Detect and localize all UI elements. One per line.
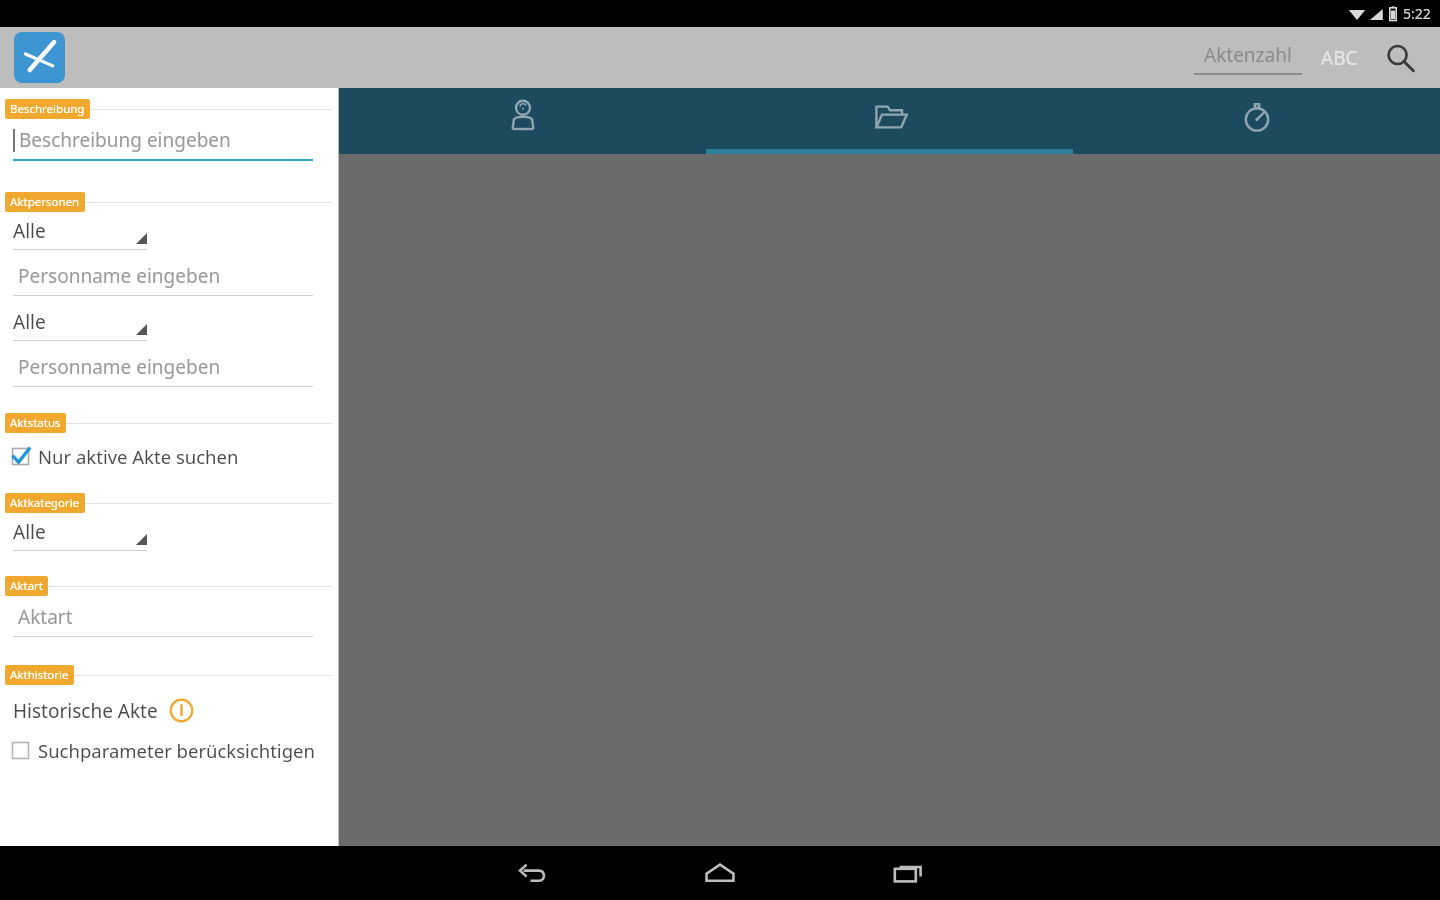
staticText: ABC [1321,45,1358,71]
staticText: Akthistorie [10,667,69,683]
button[interactable]: Aktart [13,604,313,637]
staticText: Aktart [10,578,43,594]
staticText: Aktart [18,604,73,630]
staticText: 5:22 [1403,4,1431,23]
button[interactable]: Alle [13,309,147,341]
button[interactable]: Back [484,846,580,900]
button[interactable]: Suchparameter berücksichtigen [11,738,331,763]
staticText: Beschreibung eingeben [19,127,231,153]
button[interactable]: App [14,32,65,83]
staticText: Suchparameter berücksichtigen [38,738,315,763]
staticText: Historische Akte [13,698,158,724]
staticText: Aktkategorie [10,495,80,511]
button[interactable]: ABC [1321,45,1358,71]
button[interactable]: Timer [1073,88,1440,154]
button[interactable]: Historische Akte [13,697,331,724]
button[interactable]: Recents [860,846,956,900]
button[interactable]: Aktenzahl [1194,39,1302,77]
staticText: Alle [13,309,46,335]
button[interactable]: Search [1378,36,1422,80]
staticText: Nur aktive Akte suchen [38,444,239,469]
staticText: Personname eingeben [18,263,221,289]
staticText: Beschreibung [10,101,85,117]
button[interactable]: Personname eingeben [13,354,313,387]
staticText: Aktenzahl [1204,42,1292,68]
staticText: Aktstatus [10,415,61,431]
button[interactable]: Nur aktive Akte suchen [11,444,331,469]
staticText: Personname eingeben [18,354,221,380]
button[interactable]: Person [339,88,706,154]
button[interactable]: Alle [13,519,147,551]
button[interactable]: Personname eingeben [13,263,313,296]
button[interactable]: Beschreibung eingeben [13,127,313,161]
button[interactable]: Alle [13,218,147,250]
staticText: Aktpersonen [10,194,80,210]
button[interactable]: Files [706,88,1073,154]
staticText: Alle [13,218,46,244]
button[interactable]: Home [672,846,768,900]
staticText: Alle [13,519,46,545]
